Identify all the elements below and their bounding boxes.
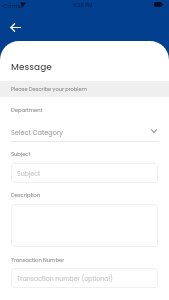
- button[interactable]: Transaction number: [11, 268, 158, 288]
- staticText: Subject: [11, 151, 31, 158]
- button[interactable]: Back: [6, 18, 24, 36]
- staticText: Transaction number (optional): [17, 274, 113, 283]
- staticText: Please Describe your problem: [11, 86, 87, 93]
- staticText: Department: [11, 107, 43, 114]
- staticText: Subject: [17, 169, 41, 178]
- staticText: Select Category: [11, 128, 63, 137]
- button[interactable]: Subject: [11, 163, 158, 183]
- button[interactable]: Description: [11, 204, 158, 247]
- staticText: 6:29 PM: [73, 2, 93, 9]
- button[interactable]: Select Category: [0, 125, 169, 139]
- staticText: Transaction Number: [11, 257, 65, 264]
- staticText: Description: [11, 192, 41, 199]
- staticText: Message: [11, 61, 52, 74]
- staticText: Carrier: [3, 2, 23, 10]
